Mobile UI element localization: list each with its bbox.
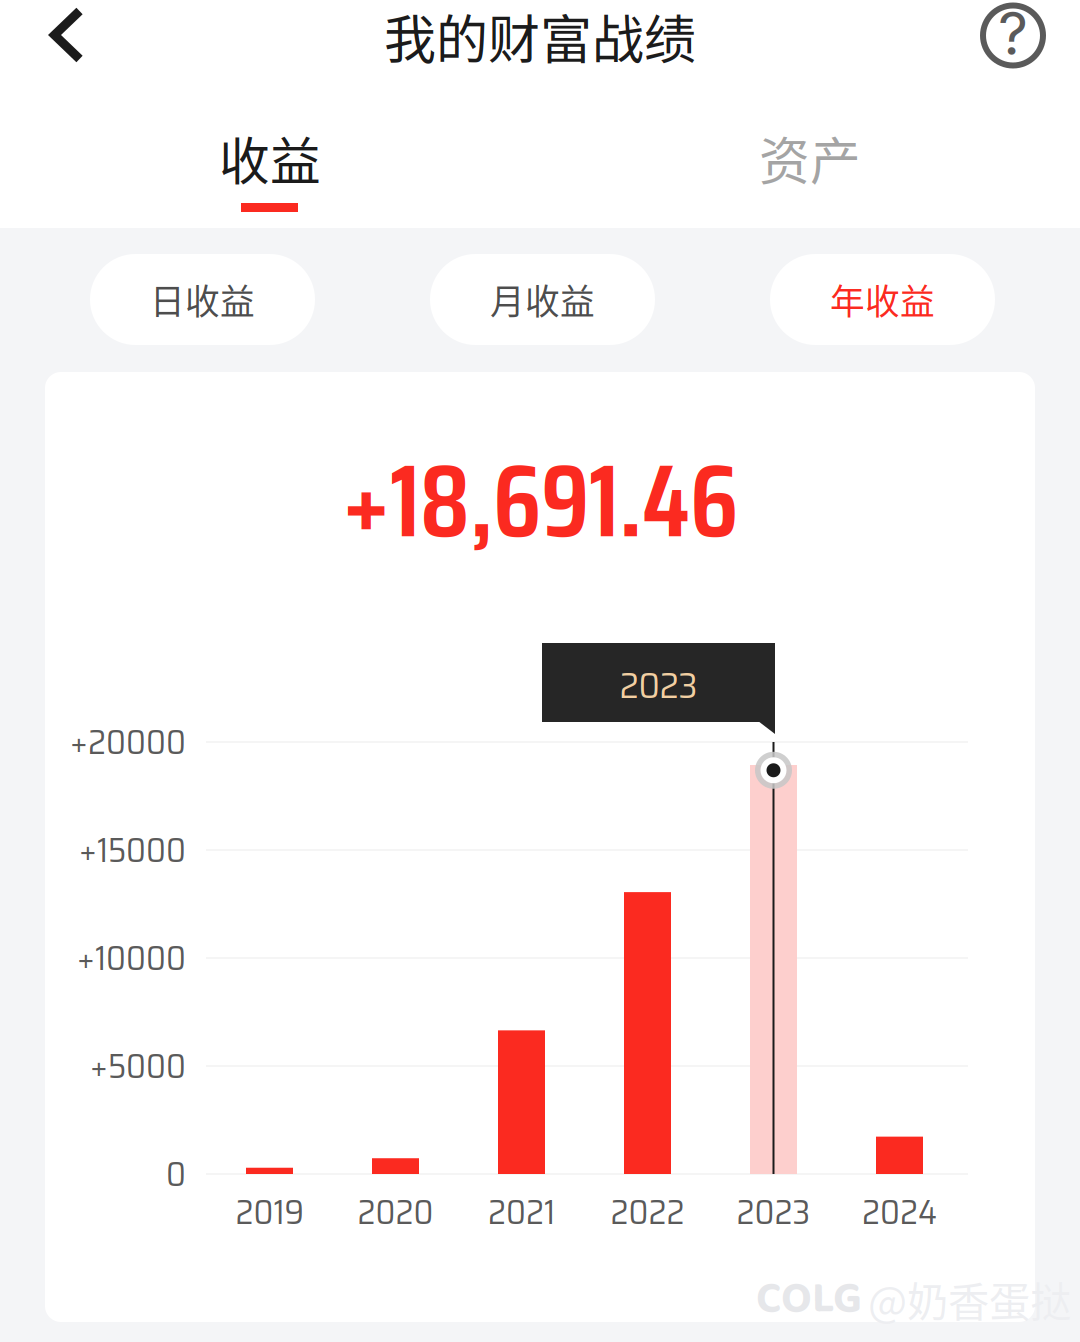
- staticText: +18,691.46: [342, 421, 738, 581]
- button[interactable]: 年收益: [770, 254, 995, 345]
- staticText: 年收益: [830, 274, 935, 325]
- staticText: 2019: [235, 1185, 303, 1239]
- staticText: 2022: [610, 1185, 684, 1239]
- staticText: 2024: [862, 1185, 937, 1239]
- staticText: 资产: [759, 121, 861, 195]
- button[interactable]: 收益: [0, 106, 540, 228]
- staticText: 我的财富战绩: [384, 0, 696, 74]
- staticText: 收益: [219, 121, 321, 195]
- staticText: 0: [166, 1147, 186, 1201]
- button[interactable]: 日收益: [90, 254, 315, 345]
- staticText: +20000: [70, 715, 186, 769]
- staticText: +15000: [79, 823, 186, 877]
- staticText: ?: [998, 0, 1028, 69]
- staticText: +10000: [77, 931, 186, 985]
- staticText: 2021: [488, 1185, 555, 1239]
- button[interactable]: 月收益: [430, 254, 655, 345]
- staticText: 2020: [357, 1185, 433, 1239]
- button[interactable]: Help: [958, 0, 1068, 84]
- staticText: 日收益: [150, 274, 255, 325]
- staticText: 2023: [736, 1185, 810, 1239]
- button[interactable]: 资产: [540, 106, 1080, 228]
- staticText: 2023: [619, 656, 697, 714]
- staticText: @奶香蛋挞: [868, 1269, 1071, 1329]
- staticText: 月收益: [490, 274, 595, 325]
- staticText: +5000: [90, 1039, 186, 1093]
- staticText: COLG: [756, 1264, 862, 1334]
- button[interactable]: Back: [7, 6, 127, 90]
